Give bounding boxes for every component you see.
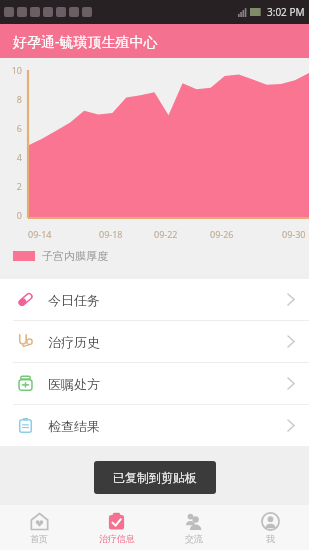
button[interactable]: 医嘱处方 <box>0 363 309 404</box>
staticText: 09-26 <box>210 228 234 240</box>
staticText: 已复制到剪贴板 <box>113 470 197 485</box>
button[interactable]: 治疗信息 <box>78 505 155 550</box>
button[interactable]: 治疗历史 <box>0 321 309 362</box>
staticText: 09-22 <box>154 228 178 240</box>
staticText: 子宫内膜厚度 <box>42 249 108 263</box>
staticText: 4 <box>16 151 22 163</box>
staticText: 治疗历史 <box>48 334 100 350</box>
staticText: 2 <box>16 180 22 192</box>
staticText: 3:02 PM <box>267 5 305 19</box>
staticText: 检查结果 <box>48 418 100 434</box>
button[interactable]: 我 <box>232 505 309 550</box>
staticText: 09-30 <box>282 228 306 240</box>
button[interactable]: 今日任务 <box>0 279 309 320</box>
staticText: 0 <box>16 209 22 221</box>
button[interactable]: 检查结果 <box>0 405 309 446</box>
staticText: 8 <box>16 93 22 105</box>
staticText: 首页 <box>30 533 48 544</box>
staticText: 我 <box>266 533 275 544</box>
staticText: 交流 <box>185 533 203 544</box>
staticText: 今日任务 <box>48 292 100 308</box>
staticText: 好孕通-毓璜顶生殖中心 <box>13 32 158 51</box>
staticText: 09-14 <box>28 228 52 240</box>
staticText: 10 <box>11 64 22 76</box>
button[interactable]: 交流 <box>155 505 232 550</box>
staticText: 6 <box>16 122 22 134</box>
staticText: 09-18 <box>99 228 123 240</box>
staticText: 治疗信息 <box>99 533 135 544</box>
staticText: 医嘱处方 <box>48 376 100 392</box>
button[interactable]: 首页 <box>0 505 78 550</box>
